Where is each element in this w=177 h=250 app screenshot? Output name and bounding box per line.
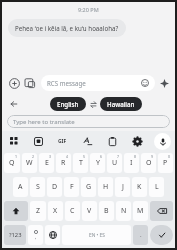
button[interactable]: W (22, 153, 37, 173)
button[interactable]: RCS message (41, 75, 155, 91)
button[interactable]: N (116, 201, 131, 221)
staticText: D (52, 182, 58, 192)
button[interactable]: Add attachment (6, 75, 22, 91)
staticText: I (130, 158, 133, 168)
staticText: . (140, 231, 142, 239)
staticText: X (53, 206, 58, 216)
button[interactable]: A (13, 177, 28, 197)
button[interactable]: EN • ES (62, 225, 131, 245)
staticText: R (61, 158, 66, 168)
staticText: Pehea ʻoe i kēia lā, e kuʻu hoaaloha? (15, 24, 119, 32)
staticText: S (36, 182, 40, 192)
staticText: 5 (83, 154, 86, 159)
staticText: W (26, 158, 33, 168)
staticText: L (155, 182, 159, 192)
button[interactable]: O (141, 153, 156, 173)
staticText: A (18, 182, 23, 192)
staticText: 4 (66, 154, 69, 159)
staticText: 6 (100, 154, 103, 159)
button[interactable]: Swap languages (86, 97, 100, 111)
staticText: ?123 (9, 231, 22, 239)
button[interactable]: GIF (50, 131, 75, 151)
staticText: 8 (134, 154, 137, 159)
staticText: 2 (32, 154, 35, 159)
button[interactable]: T (73, 153, 88, 173)
button[interactable]: Backspace (150, 201, 173, 221)
button[interactable]: F (64, 177, 79, 197)
button[interactable]: M (133, 201, 148, 221)
staticText: H (103, 182, 109, 192)
staticText: Type here to translate (13, 118, 75, 126)
staticText: T (79, 158, 83, 168)
button[interactable]: . (133, 225, 148, 245)
button[interactable]: Shift (4, 201, 28, 221)
button[interactable]: , (28, 225, 43, 245)
staticText: Z (36, 206, 41, 216)
button[interactable]: Clipboard (100, 131, 125, 151)
staticText: J (122, 182, 124, 192)
button[interactable]: Pehea ʻoe i kēia lā, e kuʻu hoaaloha? (8, 19, 126, 37)
button[interactable]: ?123 (4, 225, 26, 245)
button[interactable]: G (81, 177, 96, 197)
staticText: RCS message (47, 79, 86, 87)
button[interactable]: B (99, 201, 114, 221)
button[interactable]: U (107, 153, 122, 173)
staticText: EN • ES (89, 232, 105, 239)
button[interactable]: English (50, 97, 86, 111)
button[interactable]: L (149, 177, 164, 197)
staticText: 0 (168, 154, 171, 159)
staticText: K (137, 182, 142, 192)
button[interactable]: K (132, 177, 147, 197)
staticText: N (121, 206, 127, 216)
button[interactable]: Z (30, 201, 46, 221)
button[interactable]: Type here to translate (7, 115, 170, 128)
staticText: 7 (117, 154, 120, 159)
staticText: E (45, 158, 49, 168)
button[interactable]: Q (4, 153, 20, 173)
staticText: , (35, 234, 37, 241)
staticText: 9:20 PM (78, 6, 99, 13)
button[interactable]: Back (6, 96, 21, 111)
button[interactable]: Magic compose (157, 76, 171, 90)
staticText: English (57, 100, 79, 108)
staticText: Y (96, 158, 100, 168)
staticText: B (104, 206, 109, 216)
button[interactable]: D (47, 177, 62, 197)
button[interactable]: R (56, 153, 71, 173)
button[interactable]: Enter (150, 225, 173, 245)
button[interactable]: Hawaiian (100, 97, 142, 111)
staticText: 1 (15, 154, 18, 159)
button[interactable]: E (39, 153, 54, 173)
staticText: M (137, 206, 144, 216)
button[interactable]: V (82, 201, 97, 221)
staticText: P (163, 158, 168, 168)
staticText: U (112, 158, 118, 168)
staticText: V (87, 206, 92, 216)
button[interactable]: Settings (125, 131, 150, 151)
button[interactable]: X (48, 201, 63, 221)
button[interactable]: Handwriting (75, 131, 100, 151)
button[interactable]: Apps (2, 131, 26, 151)
button[interactable]: C (65, 201, 80, 221)
other: Emoji (141, 79, 149, 87)
staticText: 3 (49, 154, 52, 159)
button[interactable]: Voice input (150, 131, 175, 151)
button[interactable]: H (98, 177, 113, 197)
button[interactable]: Change language (45, 225, 60, 245)
button[interactable]: P (158, 153, 173, 173)
button[interactable]: S (30, 177, 45, 197)
button[interactable]: Stickers (26, 131, 50, 151)
staticText: G (86, 182, 92, 192)
button[interactable]: J (115, 177, 130, 197)
staticText: 9 (151, 154, 154, 159)
staticText: Q (9, 158, 15, 168)
button[interactable]: Gallery (22, 75, 38, 91)
staticText: O (146, 158, 152, 168)
staticText: C (70, 206, 75, 216)
staticText: GIF (58, 138, 67, 145)
staticText: Hawaiian (107, 100, 135, 108)
button[interactable]: Y (90, 153, 105, 173)
staticText: F (70, 182, 74, 192)
button[interactable]: I (124, 153, 139, 173)
